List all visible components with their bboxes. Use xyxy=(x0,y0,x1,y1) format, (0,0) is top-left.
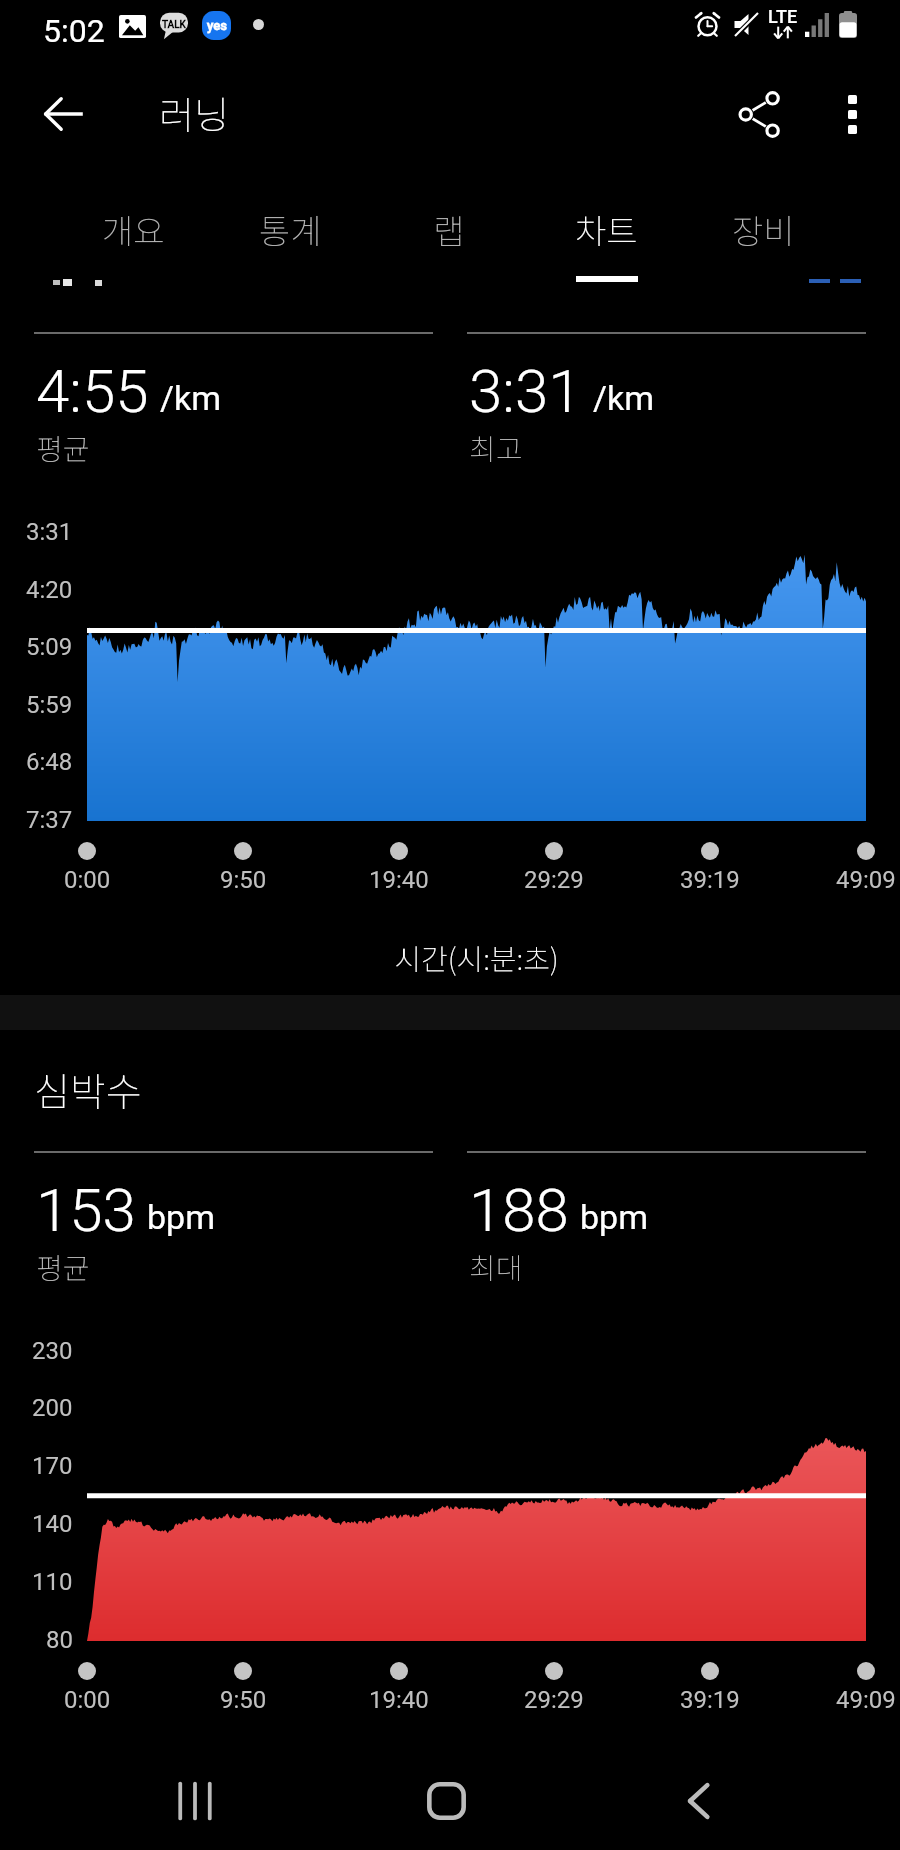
staticText: 4:55 xyxy=(36,356,149,426)
staticText: 49:09 xyxy=(836,866,896,894)
staticText: 80 xyxy=(46,1626,73,1654)
button[interactable]: Share xyxy=(724,78,796,150)
staticText: 230 xyxy=(32,1337,73,1365)
button[interactable]: Back xyxy=(643,1753,753,1848)
staticText: 장비 xyxy=(732,205,795,254)
staticText: /km xyxy=(160,378,222,418)
button[interactable]: Back xyxy=(29,79,99,149)
staticText: LTE xyxy=(768,6,798,27)
staticText: 29:29 xyxy=(524,866,584,894)
staticText: 통계 xyxy=(259,205,322,254)
staticText: 170 xyxy=(32,1452,73,1480)
staticText: 49:09 xyxy=(836,1686,896,1714)
staticText: 3:31 xyxy=(469,356,582,426)
staticText: 평균 xyxy=(36,1245,90,1287)
staticText: 5:09 xyxy=(26,633,73,661)
staticText: 3:31 xyxy=(26,518,73,546)
staticText: 4:20 xyxy=(26,576,73,604)
staticText: 0:00 xyxy=(64,866,111,894)
staticText: 29:29 xyxy=(524,1686,584,1714)
button[interactable]: 장비 xyxy=(685,180,842,288)
staticText: 러닝 xyxy=(159,85,229,140)
staticText: 시간(시:분:초) xyxy=(394,936,559,978)
staticText: 최고 xyxy=(469,426,523,468)
button[interactable]: 통계 xyxy=(212,180,369,288)
staticText: 188 xyxy=(469,1175,569,1245)
button[interactable]: 개요 xyxy=(55,180,212,288)
staticText: /km xyxy=(593,378,655,418)
staticText: bpm xyxy=(580,1197,648,1237)
staticText: 19:40 xyxy=(369,866,429,894)
staticText: TALK xyxy=(162,19,186,31)
staticText: 5:59 xyxy=(26,691,73,719)
staticText: 7:37 xyxy=(26,806,73,834)
staticText: 랩 xyxy=(433,205,465,254)
button[interactable]: 랩 xyxy=(370,180,527,288)
button[interactable]: 차트 xyxy=(528,180,685,288)
button[interactable]: Home xyxy=(391,1753,501,1848)
staticText: yes xyxy=(207,18,227,33)
staticText: 차트 xyxy=(575,205,638,254)
staticText: 19:40 xyxy=(369,1686,429,1714)
staticText: 최대 xyxy=(469,1245,523,1287)
staticText: 5:02 xyxy=(43,12,105,50)
button[interactable]: Recent apps xyxy=(140,1753,250,1848)
button[interactable]: More options xyxy=(820,82,884,146)
staticText: 평균 xyxy=(36,426,90,468)
staticText: bpm xyxy=(147,1197,215,1237)
staticText: 심박수 xyxy=(34,1061,142,1117)
staticText: 6:48 xyxy=(26,748,73,776)
staticText: 153 xyxy=(36,1175,136,1245)
staticText: 110 xyxy=(32,1568,73,1596)
staticText: 개요 xyxy=(102,205,165,254)
staticText: 39:19 xyxy=(680,1686,740,1714)
staticText: 140 xyxy=(32,1510,73,1538)
staticText: 0:00 xyxy=(64,1686,111,1714)
staticText: 200 xyxy=(32,1394,73,1422)
staticText: 9:50 xyxy=(220,1686,267,1714)
staticText: 9:50 xyxy=(220,866,267,894)
staticText: 39:19 xyxy=(680,866,740,894)
